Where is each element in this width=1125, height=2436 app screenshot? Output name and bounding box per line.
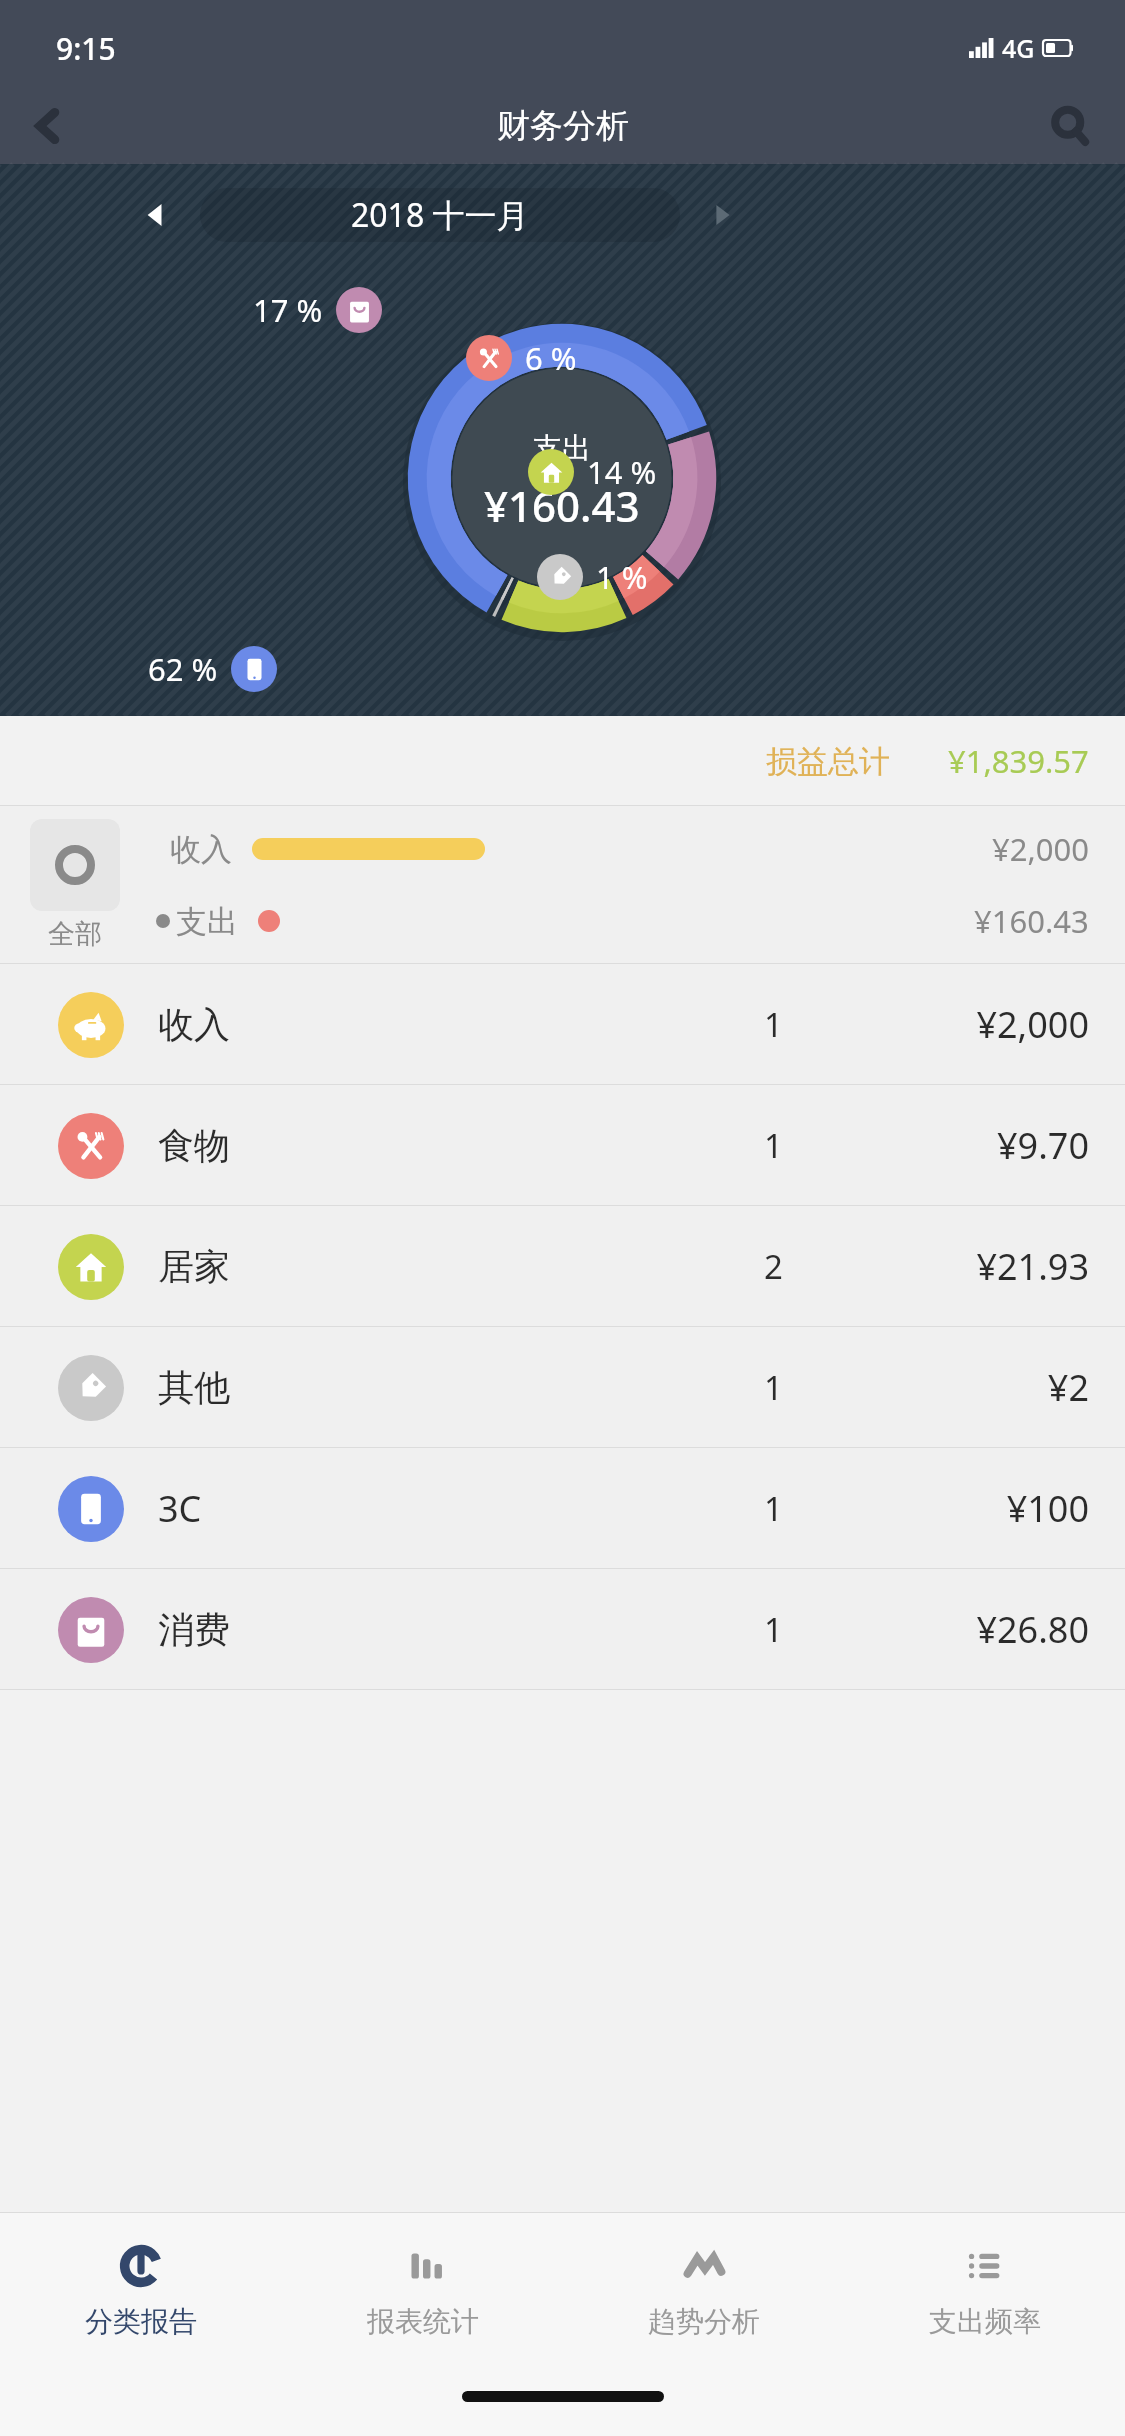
staticText: 17 % <box>253 289 323 331</box>
staticText: 财务分析 <box>497 105 629 147</box>
button[interactable]: 2018 十一月 <box>200 188 680 242</box>
staticText: 趋势分析 <box>648 2304 760 2339</box>
staticText: 收入 <box>170 830 232 869</box>
staticText: 食物 <box>158 1123 230 1168</box>
button[interactable]: 其他 <box>0 1327 1125 1448</box>
staticText: 损益总计 <box>766 742 890 781</box>
staticText: 1 <box>764 1123 783 1168</box>
button[interactable]: 分类报告 <box>0 2212 282 2368</box>
staticText: 1 <box>764 1002 783 1047</box>
staticText: ¥26.80 <box>976 1605 1089 1654</box>
staticText: 收入 <box>158 1002 230 1047</box>
button[interactable]: 消费 <box>0 1569 1125 1690</box>
staticText: 支出 <box>176 902 238 941</box>
button[interactable]: 报表统计 <box>282 2212 563 2368</box>
staticText: 支出 <box>533 430 591 467</box>
button[interactable]: Back <box>0 88 96 164</box>
staticText: ¥21.93 <box>976 1242 1089 1291</box>
button[interactable]: Search <box>1015 88 1125 164</box>
staticText: 2 <box>764 1244 783 1289</box>
button[interactable]: 趋势分析 <box>563 2212 844 2368</box>
staticText: 1 <box>764 1365 783 1410</box>
button[interactable]: Previous month <box>130 189 182 241</box>
staticText: 4G <box>1002 31 1035 65</box>
staticText: 其他 <box>158 1365 230 1410</box>
staticText: 62 % <box>148 648 218 690</box>
staticText: 3C <box>158 1484 202 1533</box>
staticText: 分类报告 <box>85 2304 197 2339</box>
staticText: 14 % <box>587 451 657 493</box>
staticText: ¥1,839.57 <box>948 740 1089 782</box>
button[interactable]: 食物 <box>0 1085 1125 1206</box>
staticText: 1 <box>764 1607 783 1652</box>
staticText: ¥2,000 <box>992 828 1089 870</box>
staticText: 1 % <box>596 556 648 598</box>
staticText: 居家 <box>158 1244 230 1289</box>
staticText: 2018 十一月 <box>351 193 529 237</box>
button[interactable]: 全部 <box>0 806 1125 964</box>
button[interactable]: 居家 <box>0 1206 1125 1327</box>
button[interactable]: Next month <box>696 189 748 241</box>
button[interactable]: 收入 <box>0 964 1125 1085</box>
staticText: 全部 <box>48 917 102 951</box>
button[interactable]: 3C <box>0 1448 1125 1569</box>
staticText: ¥2,000 <box>976 1000 1089 1049</box>
staticText: ¥100 <box>1006 1484 1089 1533</box>
staticText: 9:15 <box>56 28 116 69</box>
staticText: 支出频率 <box>929 2304 1041 2339</box>
staticText: 1 <box>764 1486 783 1531</box>
staticText: ¥2 <box>1047 1363 1089 1412</box>
staticText: 报表统计 <box>367 2304 479 2339</box>
staticText: 消费 <box>158 1607 230 1652</box>
staticText: 6 % <box>525 337 577 379</box>
staticText: ¥9.70 <box>996 1121 1089 1170</box>
staticText: ¥160.43 <box>484 477 640 534</box>
button[interactable]: 支出频率 <box>844 2212 1125 2368</box>
staticText: ¥160.43 <box>974 900 1089 942</box>
